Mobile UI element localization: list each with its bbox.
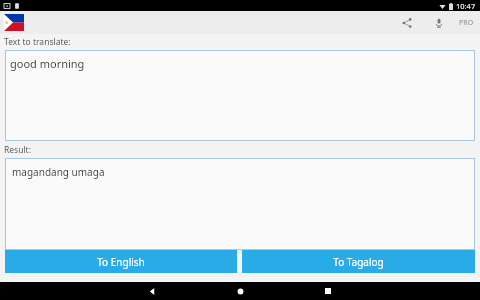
button[interactable]: To Tagalog	[242, 250, 475, 273]
staticText: To Tagalog	[333, 255, 384, 269]
staticText: Result:	[4, 144, 31, 156]
button[interactable]: Recent apps	[306, 282, 350, 300]
staticText: To English	[97, 255, 145, 269]
button[interactable]: App icon	[4, 14, 24, 31]
button[interactable]: Back	[130, 282, 174, 300]
button[interactable]: Share	[397, 13, 417, 33]
staticText: 10:47	[456, 1, 476, 11]
staticText: magandang umaga	[12, 165, 105, 179]
button[interactable]: good morning	[5, 50, 475, 141]
staticText: PRO	[459, 18, 474, 28]
staticText: good morning	[10, 56, 85, 71]
staticText: Text to translate:	[4, 36, 71, 48]
button[interactable]: magandang umaga	[5, 158, 475, 250]
button[interactable]: PRO	[459, 13, 474, 33]
button[interactable]: Voice input	[429, 13, 449, 33]
button[interactable]: Home	[218, 282, 262, 300]
button[interactable]: To English	[5, 250, 237, 273]
